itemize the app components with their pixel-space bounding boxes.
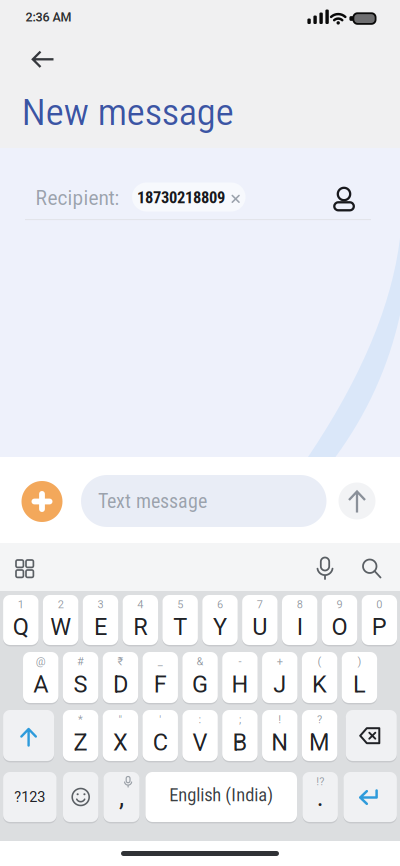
button[interactable] bbox=[0, 0, 35, 50]
staticText: L bbox=[353, 671, 366, 698]
staticText: 0 bbox=[376, 598, 382, 611]
staticText: 2 bbox=[58, 598, 64, 611]
staticText: R bbox=[133, 613, 147, 641]
button[interactable] bbox=[0, 0, 35, 50]
button[interactable] bbox=[0, 0, 35, 51]
staticText: E bbox=[94, 613, 107, 641]
button[interactable] bbox=[0, 0, 35, 51]
button[interactable] bbox=[0, 0, 35, 50]
staticText: V bbox=[193, 729, 208, 756]
staticText: 6 bbox=[217, 598, 223, 611]
button[interactable] bbox=[0, 0, 400, 866]
button[interactable] bbox=[0, 0, 35, 51]
button[interactable]: Text message bbox=[0, 0, 245, 52]
staticText: H bbox=[231, 671, 248, 698]
staticText: English (India) bbox=[169, 784, 273, 806]
button[interactable] bbox=[0, 0, 35, 51]
button[interactable] bbox=[0, 0, 35, 50]
staticText: 9 bbox=[336, 598, 342, 611]
staticText: 4 bbox=[137, 598, 143, 611]
button[interactable] bbox=[0, 0, 35, 51]
staticText: ; bbox=[239, 713, 241, 726]
staticText: ' bbox=[159, 713, 161, 726]
button[interactable] bbox=[0, 0, 35, 50]
staticText: ! bbox=[278, 713, 281, 726]
staticText: 5 bbox=[177, 598, 183, 611]
staticText: J bbox=[273, 671, 286, 698]
staticText: # bbox=[77, 655, 84, 668]
staticText: W bbox=[50, 613, 71, 641]
staticText: - bbox=[238, 655, 241, 668]
button[interactable] bbox=[0, 0, 53, 50]
button[interactable] bbox=[0, 0, 35, 51]
button[interactable] bbox=[0, 0, 35, 51]
staticText: A bbox=[33, 671, 48, 698]
button[interactable] bbox=[0, 0, 53, 50]
staticText: 2:36 AM bbox=[25, 10, 71, 25]
staticText: 3 bbox=[97, 598, 103, 611]
button[interactable] bbox=[0, 0, 44, 36]
staticText: New message bbox=[22, 90, 234, 134]
button[interactable] bbox=[0, 0, 36, 50]
staticText: & bbox=[197, 655, 204, 668]
staticText: I bbox=[297, 613, 303, 641]
button[interactable] bbox=[0, 0, 35, 50]
button[interactable] bbox=[0, 0, 51, 51]
button[interactable] bbox=[0, 0, 35, 51]
button[interactable] bbox=[0, 0, 35, 51]
button[interactable] bbox=[0, 0, 35, 50]
staticText: S bbox=[74, 671, 88, 698]
button[interactable] bbox=[0, 0, 35, 50]
staticText: F bbox=[154, 671, 167, 698]
button[interactable] bbox=[0, 0, 35, 51]
staticText: K bbox=[312, 671, 327, 698]
staticText: N bbox=[271, 729, 288, 756]
staticText: D bbox=[113, 671, 128, 698]
button[interactable] bbox=[0, 0, 151, 50]
staticText: 1 bbox=[18, 598, 24, 611]
staticText: _ bbox=[158, 655, 163, 668]
staticText: : bbox=[199, 713, 202, 726]
button[interactable] bbox=[0, 0, 400, 866]
button[interactable] bbox=[0, 0, 35, 51]
staticText: 8 bbox=[297, 598, 303, 611]
staticText: 7 bbox=[257, 598, 263, 611]
staticText: M bbox=[309, 729, 330, 756]
button[interactable] bbox=[0, 0, 35, 50]
staticText: , bbox=[119, 782, 124, 812]
staticText: Text message bbox=[98, 489, 207, 513]
button[interactable] bbox=[0, 0, 35, 50]
button[interactable]: 18730218809 bbox=[0, 0, 400, 866]
staticText: Y bbox=[213, 613, 227, 641]
button[interactable] bbox=[0, 0, 35, 50]
staticText: Z bbox=[74, 729, 88, 756]
staticText: ? bbox=[317, 713, 322, 726]
staticText: 18730218809 bbox=[137, 188, 225, 207]
staticText: T bbox=[173, 613, 187, 641]
staticText: * bbox=[78, 713, 83, 726]
staticText: B bbox=[232, 729, 247, 756]
staticText: ( bbox=[318, 655, 322, 668]
button[interactable] bbox=[0, 0, 35, 51]
button[interactable] bbox=[0, 0, 35, 51]
staticText: " bbox=[118, 713, 122, 726]
staticText: !? bbox=[316, 775, 324, 788]
button[interactable] bbox=[0, 0, 400, 866]
staticText: X bbox=[113, 729, 128, 756]
staticText: Recipient: bbox=[36, 186, 120, 210]
button[interactable] bbox=[0, 0, 35, 50]
staticText: ?123 bbox=[14, 788, 45, 805]
staticText: G bbox=[192, 671, 208, 698]
staticText: ) bbox=[357, 655, 361, 668]
staticText: @ bbox=[36, 655, 46, 668]
button[interactable] bbox=[0, 0, 35, 51]
button[interactable] bbox=[0, 0, 35, 51]
button[interactable] bbox=[0, 0, 51, 51]
button[interactable] bbox=[0, 0, 41, 41]
staticText: Q bbox=[13, 613, 29, 641]
staticText: O bbox=[331, 613, 347, 641]
button[interactable] bbox=[0, 0, 35, 51]
staticText: . bbox=[317, 782, 324, 812]
